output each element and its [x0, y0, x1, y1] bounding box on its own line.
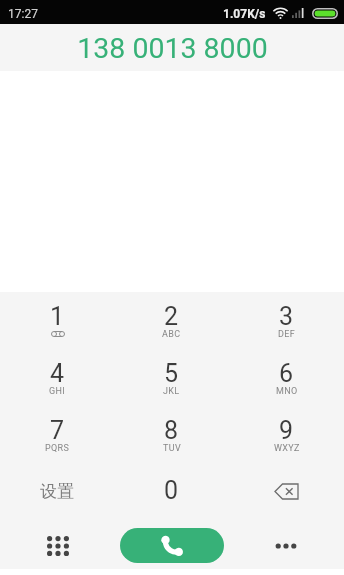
staticText: WXYZ	[274, 443, 300, 454]
staticText: 1.07K/s	[223, 7, 266, 21]
button[interactable]: Delete	[229, 463, 344, 519]
button[interactable]: 2	[114, 292, 229, 349]
button[interactable]: 7	[0, 406, 114, 463]
button[interactable]: 1	[0, 292, 114, 349]
staticText: 138 0013 8000	[77, 32, 268, 65]
staticText: 8	[164, 416, 179, 445]
staticText: 9	[279, 416, 294, 445]
button[interactable]: 4	[0, 349, 114, 406]
button[interactable]: 5	[114, 349, 229, 406]
staticText: ABC	[162, 329, 181, 340]
button[interactable]: 6	[229, 349, 344, 406]
button[interactable]: 9	[229, 406, 344, 463]
staticText: 0	[164, 476, 179, 505]
staticText: 2	[164, 302, 179, 331]
staticText: 4	[50, 359, 65, 388]
staticText: 1	[50, 302, 65, 331]
button[interactable]: 0	[114, 463, 229, 519]
staticText: 设置	[40, 481, 74, 502]
staticText: 7	[50, 416, 65, 445]
staticText: DEF	[278, 329, 296, 340]
staticText: 3	[279, 302, 294, 331]
staticText: 17:27	[8, 7, 38, 21]
staticText: TUV	[163, 443, 181, 454]
button[interactable]: More	[228, 519, 344, 569]
button[interactable]: 3	[229, 292, 344, 349]
staticText: GHI	[49, 386, 66, 397]
staticText: 6	[279, 359, 294, 388]
staticText: PQRS	[45, 443, 70, 454]
button[interactable]: 8	[114, 406, 229, 463]
button[interactable]: Dialpad	[0, 519, 116, 569]
button[interactable]: Call	[120, 528, 224, 563]
staticText: MNO	[276, 386, 298, 397]
staticText: JKL	[163, 386, 180, 397]
button[interactable]: 设置	[0, 463, 114, 519]
staticText: 5	[164, 359, 179, 388]
